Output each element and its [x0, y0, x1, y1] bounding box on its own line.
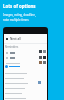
staticText: Images, rating, deadline, note multiple … — [3, 13, 36, 22]
button[interactable] — [5, 76, 47, 81]
button[interactable]: Back — [4, 34, 47, 43]
button[interactable] — [6, 61, 26, 65]
button[interactable] — [5, 86, 47, 91]
button[interactable] — [5, 81, 47, 86]
button[interactable]: Photo — [39, 56, 46, 59]
button[interactable]: Photo — [39, 61, 46, 64]
button[interactable] — [5, 71, 47, 76]
button[interactable] — [5, 91, 47, 96]
button[interactable]: Back — [5, 37, 9, 41]
button[interactable] — [6, 56, 20, 60]
staticText: Next all — [10, 37, 21, 41]
button[interactable]: Photo — [39, 50, 46, 53]
button[interactable] — [5, 64, 29, 69]
button[interactable] — [6, 51, 20, 55]
button[interactable] — [5, 96, 47, 100]
staticText: Reminders — [5, 45, 19, 49]
staticText: Lots of options — [3, 3, 36, 9]
